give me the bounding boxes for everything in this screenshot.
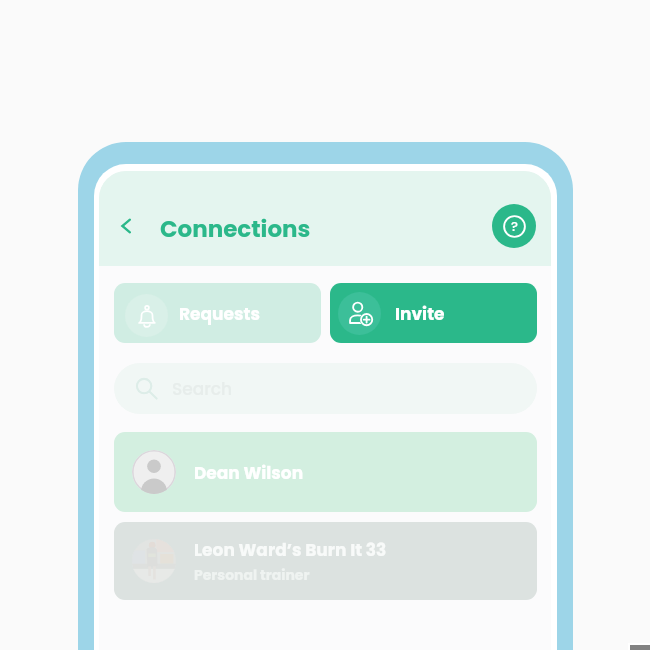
- button[interactable]: Requests: [114, 283, 321, 343]
- staticText: Requests: [179, 302, 260, 326]
- staticText: Search: [172, 377, 233, 401]
- button[interactable]: Leon Ward’s Burn It 33: [114, 522, 537, 600]
- staticText: Invite: [395, 302, 445, 326]
- button[interactable]: Help: [492, 204, 536, 248]
- button[interactable]: Dean Wilson: [114, 432, 537, 512]
- staticText: ?: [511, 217, 518, 235]
- staticText: Leon Ward’s Burn It 33: [194, 538, 387, 562]
- staticText: Connections: [160, 213, 311, 245]
- staticText: Personal trainer: [194, 565, 310, 585]
- staticText: Dean Wilson: [194, 461, 304, 485]
- button[interactable]: Invite: [330, 283, 537, 343]
- button[interactable]: Back: [108, 208, 144, 244]
